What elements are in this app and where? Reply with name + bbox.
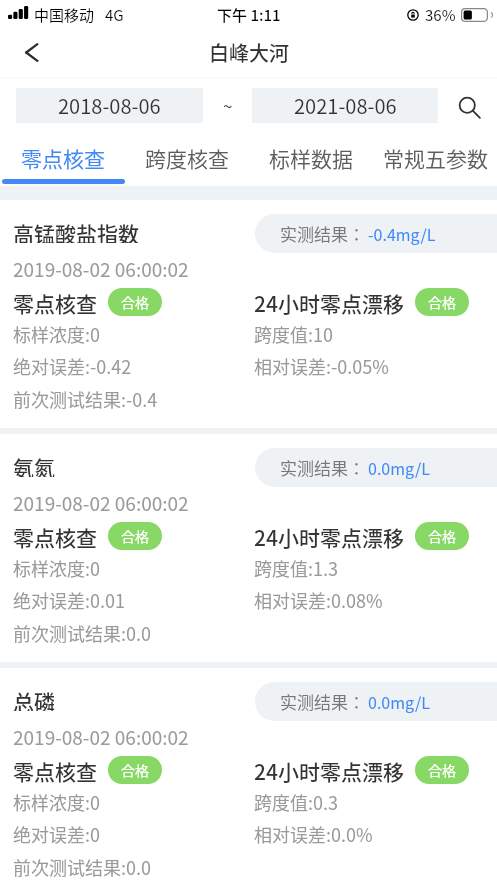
staticText: 零点核查 [13, 756, 97, 784]
button[interactable]: 实测结果： [255, 448, 497, 487]
staticText: 前次测试结果:-0.4 [13, 386, 158, 409]
button[interactable]: 合格 [415, 522, 469, 550]
staticText: 高锰酸盐指数 [13, 218, 139, 243]
staticText: 2019-08-02 06:00:02 [13, 255, 189, 280]
staticText: 常规五参数 [383, 143, 488, 173]
button[interactable]: 2018-08-06 [16, 88, 203, 123]
staticText: 标样数据 [269, 143, 353, 173]
staticText: 中国移动 [34, 4, 95, 26]
button[interactable]: 合格 [108, 522, 162, 550]
staticText: 2019-08-02 06:00:02 [13, 723, 189, 748]
staticText: 0.0mg/L [368, 456, 430, 479]
staticText: 相对误差:0.0% [254, 821, 373, 844]
staticText: 合格 [428, 526, 456, 546]
staticText: 相对误差:-0.05% [254, 353, 389, 376]
staticText: 标样浓度:0 [13, 789, 100, 812]
button[interactable]: 常规五参数 [373, 134, 497, 186]
button[interactable]: Search [448, 86, 492, 130]
staticText: 实测结果： [280, 689, 365, 714]
staticText: 合格 [121, 292, 149, 312]
staticText: 合格 [121, 760, 149, 780]
staticText: 绝对误差:0 [13, 821, 100, 844]
staticText: 跨度值:0.3 [254, 789, 338, 812]
staticText: 2018-08-06 [58, 91, 161, 120]
staticText: 4G [105, 4, 124, 26]
button[interactable]: 标样数据 [249, 134, 373, 186]
staticText: 跨度值:10 [254, 321, 333, 344]
staticText: 合格 [428, 292, 456, 312]
staticText: 跨度值:1.3 [254, 555, 338, 578]
staticText: 实测结果： [280, 221, 365, 246]
staticText: 36% [425, 4, 456, 26]
staticText: 跨度核查 [145, 143, 229, 173]
button[interactable]: 实测结果： [255, 682, 497, 721]
button[interactable]: 实测结果： [255, 214, 497, 253]
staticText: 零点核查 [13, 522, 97, 550]
button[interactable]: 合格 [415, 756, 469, 784]
staticText: 标样浓度:0 [13, 555, 100, 578]
staticText: 2019-08-02 06:00:02 [13, 489, 189, 514]
button[interactable]: 合格 [108, 756, 162, 784]
staticText: 24小时零点漂移 [254, 756, 404, 784]
staticText: 实测结果： [280, 455, 365, 480]
staticText: -0.4mg/L [368, 222, 436, 245]
staticText: 下午 1:11 [217, 4, 281, 26]
staticText: 氨氮 [13, 452, 55, 477]
staticText: 白峰大河 [209, 38, 289, 67]
staticText: 24小时零点漂移 [254, 522, 404, 550]
staticText: 相对误差:0.08% [254, 587, 383, 610]
button[interactable]: 跨度核查 [125, 134, 249, 186]
staticText: 绝对误差:-0.42 [13, 353, 132, 376]
button[interactable]: Back [5, 28, 57, 76]
staticText: 绝对误差:0.01 [13, 587, 125, 610]
staticText: 24小时零点漂移 [254, 288, 404, 316]
staticText: 零点核查 [21, 143, 105, 173]
staticText: 合格 [121, 526, 149, 546]
button[interactable]: 合格 [415, 288, 469, 316]
button[interactable]: 2021-08-06 [252, 88, 438, 123]
staticText: 总磷 [13, 686, 55, 711]
staticText: ~ [223, 93, 233, 118]
staticText: 2021-08-06 [294, 91, 397, 120]
staticText: 零点核查 [13, 288, 97, 316]
staticText: 前次测试结果:0.0 [13, 854, 151, 877]
staticText: 前次测试结果:0.0 [13, 620, 151, 643]
button[interactable]: 合格 [108, 288, 162, 316]
button[interactable]: 零点核查 [0, 134, 125, 186]
staticText: 0.0mg/L [368, 690, 430, 713]
staticText: 合格 [428, 760, 456, 780]
staticText: 标样浓度:0 [13, 321, 100, 344]
